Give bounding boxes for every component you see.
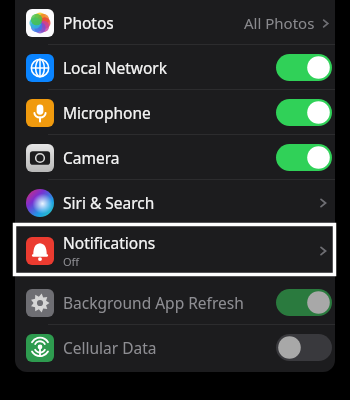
button[interactable]: Toggle Local Network [276, 54, 332, 81]
button[interactable]: Cellular Data [15, 325, 335, 370]
staticText: Background App Refresh [63, 292, 244, 313]
staticText: All Photos [244, 13, 315, 33]
staticText: Microphone [63, 102, 151, 123]
button[interactable]: Microphone [15, 90, 335, 135]
button[interactable]: Photos [15, 0, 335, 45]
button[interactable]: Toggle Background App Refresh [276, 289, 332, 316]
staticText: Photos [63, 12, 114, 33]
staticText: Cellular Data [63, 337, 157, 358]
button[interactable]: Toggle Camera [276, 144, 332, 171]
staticText: Local Network [63, 57, 168, 78]
button[interactable]: Toggle Microphone [276, 99, 332, 126]
button[interactable]: Siri & Search [15, 180, 335, 225]
button[interactable]: Toggle Cellular Data [276, 334, 332, 361]
staticText: Off [63, 254, 80, 269]
button[interactable]: Background App Refresh [15, 280, 335, 325]
staticText: Notifications [63, 232, 156, 253]
button[interactable]: Camera [15, 135, 335, 180]
staticText: Camera [63, 147, 120, 168]
button[interactable]: Local Network [15, 45, 335, 90]
button[interactable]: Notifications [15, 226, 335, 275]
staticText: Siri & Search [63, 192, 155, 213]
